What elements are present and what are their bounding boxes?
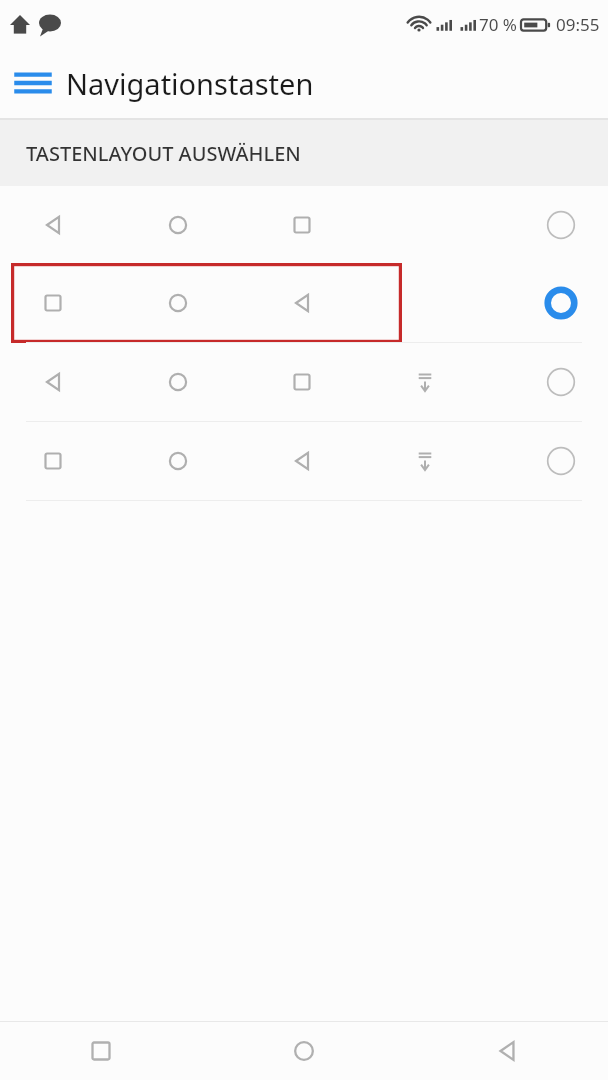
- button[interactable]: Menü: [0, 48, 66, 118]
- staticText: 70 %: [479, 13, 517, 36]
- button[interactable]: Tastenlayout Option: [0, 343, 608, 421]
- staticText: Navigationstasten: [66, 64, 314, 103]
- button[interactable]: Übersicht: [0, 1022, 202, 1080]
- button[interactable]: Zurück: [405, 1022, 608, 1080]
- staticText: TASTENLAYOUT AUSWÄHLEN: [26, 140, 301, 167]
- staticText: 09:55: [556, 13, 600, 36]
- button[interactable]: Tastenlayout Option: [0, 186, 608, 264]
- button[interactable]: Tastenlayout Option: [0, 422, 608, 500]
- button[interactable]: Tastenlayout Option: [0, 264, 608, 342]
- button[interactable]: Startseite: [202, 1022, 405, 1080]
